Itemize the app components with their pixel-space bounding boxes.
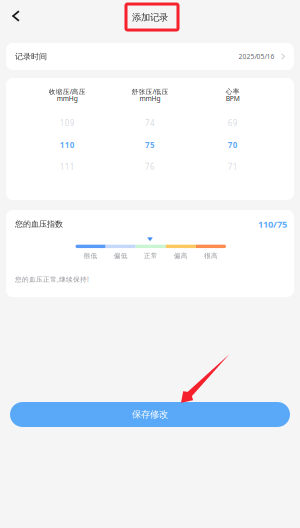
staticText: 偏高 xyxy=(174,252,188,260)
staticText: mmHg xyxy=(139,94,160,103)
button[interactable]: 记录时间 xyxy=(6,43,294,70)
staticText: 您的血压正常,继续保持! xyxy=(15,275,89,284)
staticText: 您的血压指数 xyxy=(15,219,63,229)
staticText: 71 xyxy=(228,161,238,172)
staticText: BPM xyxy=(226,94,240,103)
staticText: 69 xyxy=(228,118,238,128)
staticText: 心率 xyxy=(226,87,240,96)
staticText: 很高 xyxy=(204,252,218,260)
staticText: mmHg xyxy=(57,94,78,103)
staticText: 111 xyxy=(60,161,75,172)
staticText: 110/75 xyxy=(258,218,287,230)
staticText: 舒张压/低压 xyxy=(131,87,168,96)
staticText: 偏低 xyxy=(114,252,128,260)
staticText: 75 xyxy=(145,139,155,150)
staticText: 76 xyxy=(145,161,155,172)
staticText: 110 xyxy=(60,139,75,150)
staticText: 正常 xyxy=(144,252,158,260)
staticText: 70 xyxy=(228,139,238,150)
staticText: 很低 xyxy=(83,252,97,260)
button[interactable]: 保存修改 xyxy=(10,402,290,427)
staticText: 收缩压/高压 xyxy=(49,87,86,96)
staticText: 保存修改 xyxy=(132,409,168,420)
staticText: 添加记录 xyxy=(132,12,168,23)
staticText: 74 xyxy=(145,118,155,128)
staticText: 109 xyxy=(60,118,75,128)
button[interactable]: Back xyxy=(0,0,32,32)
staticText: 2025/05/16 xyxy=(239,52,275,61)
staticText: 记录时间 xyxy=(15,52,47,61)
